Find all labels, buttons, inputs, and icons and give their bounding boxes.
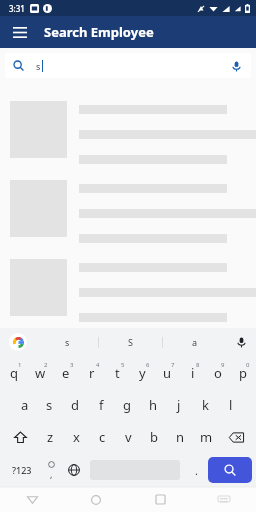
button[interactable]: g	[114, 389, 140, 421]
staticText: 0	[246, 361, 250, 369]
button[interactable]: d	[62, 389, 88, 421]
staticText: u	[163, 364, 172, 382]
staticText: p	[239, 364, 247, 382]
staticText: c	[99, 428, 106, 446]
button[interactable]: Shift	[3, 421, 37, 453]
button[interactable]: l	[218, 389, 244, 421]
button[interactable]: Home	[64, 487, 128, 512]
staticText: i	[191, 364, 195, 382]
staticText: 4	[96, 361, 100, 369]
button[interactable]: Voice search	[229, 59, 243, 73]
staticText: ?123	[12, 464, 32, 476]
staticText: q	[10, 364, 18, 382]
staticText: k	[202, 396, 209, 414]
staticText: j	[177, 396, 181, 414]
button[interactable]: S	[99, 328, 162, 356]
staticText: ,	[50, 468, 53, 480]
staticText: S	[128, 336, 133, 348]
staticText: 3:31	[9, 3, 25, 14]
button[interactable]: w	[27, 356, 53, 389]
button[interactable]: a	[12, 389, 37, 421]
staticText: 2	[44, 361, 48, 369]
staticText: y	[139, 364, 146, 382]
button[interactable]: q	[1, 356, 27, 389]
button[interactable]: x	[63, 421, 89, 453]
button[interactable]	[0, 249, 256, 328]
button[interactable]: i	[180, 356, 205, 389]
button[interactable]: Search	[208, 457, 252, 483]
staticText: 1	[18, 361, 22, 369]
staticText: n	[176, 428, 185, 446]
button[interactable]: u	[155, 356, 180, 389]
button[interactable]: .	[184, 456, 208, 484]
button[interactable]: a	[163, 328, 226, 356]
button[interactable]: Back	[0, 487, 64, 512]
button[interactable]: t	[105, 356, 130, 389]
button[interactable]: n	[167, 421, 193, 453]
staticText: Search Employee	[44, 23, 154, 41]
staticText: .	[195, 463, 198, 478]
button[interactable]: z	[37, 421, 63, 453]
button[interactable]: b	[141, 421, 167, 453]
button[interactable]: v	[115, 421, 141, 453]
staticText: 7	[171, 361, 175, 369]
staticText: 9	[221, 361, 225, 369]
staticText: v	[125, 428, 132, 446]
button[interactable]: s	[36, 328, 98, 356]
staticText: 3	[70, 361, 74, 369]
staticText: f	[99, 396, 104, 414]
staticText: s	[36, 60, 41, 72]
button[interactable]: Hide keyboard	[192, 487, 256, 512]
button[interactable]: s	[37, 389, 62, 421]
staticText: t	[115, 364, 120, 382]
staticText: a	[192, 336, 198, 348]
staticText: s	[65, 336, 70, 348]
button[interactable]: ?123	[4, 456, 40, 484]
staticText: z	[47, 428, 54, 446]
button[interactable]	[0, 170, 256, 249]
button[interactable]: y	[130, 356, 155, 389]
button[interactable]: Google	[0, 328, 36, 356]
staticText: d	[71, 396, 79, 414]
staticText: o	[214, 364, 222, 382]
button[interactable]: Change language	[62, 456, 86, 484]
button[interactable]	[0, 91, 256, 170]
button[interactable]: o	[205, 356, 230, 389]
button[interactable]: j	[166, 389, 192, 421]
button[interactable]: s	[5, 53, 251, 78]
button[interactable]: k	[192, 389, 218, 421]
staticText: w	[35, 364, 46, 382]
button[interactable]: Emoji	[40, 456, 62, 484]
staticText: 8	[196, 361, 200, 369]
button[interactable]: Open navigation menu	[6, 18, 34, 46]
button[interactable]: Recent apps	[128, 487, 192, 512]
button[interactable]: e	[53, 356, 79, 389]
button[interactable]: h	[140, 389, 166, 421]
button[interactable]: r	[79, 356, 105, 389]
staticText: l	[229, 396, 233, 414]
staticText: 5	[121, 361, 125, 369]
button[interactable]: p	[230, 356, 255, 389]
staticText: m	[200, 428, 213, 446]
button[interactable]: c	[89, 421, 115, 453]
button[interactable]: f	[88, 389, 114, 421]
button[interactable]: Backspace	[219, 421, 253, 453]
staticText: a	[21, 396, 29, 414]
staticText: 6	[146, 361, 150, 369]
staticText: e	[62, 364, 70, 382]
staticText: h	[149, 396, 158, 414]
staticText: s	[46, 396, 53, 414]
button[interactable]: m	[193, 421, 219, 453]
staticText: r	[89, 364, 95, 382]
staticText: x	[73, 428, 80, 446]
button[interactable]: Voice input	[226, 328, 256, 356]
staticText: b	[150, 428, 158, 446]
staticText: g	[123, 396, 131, 414]
